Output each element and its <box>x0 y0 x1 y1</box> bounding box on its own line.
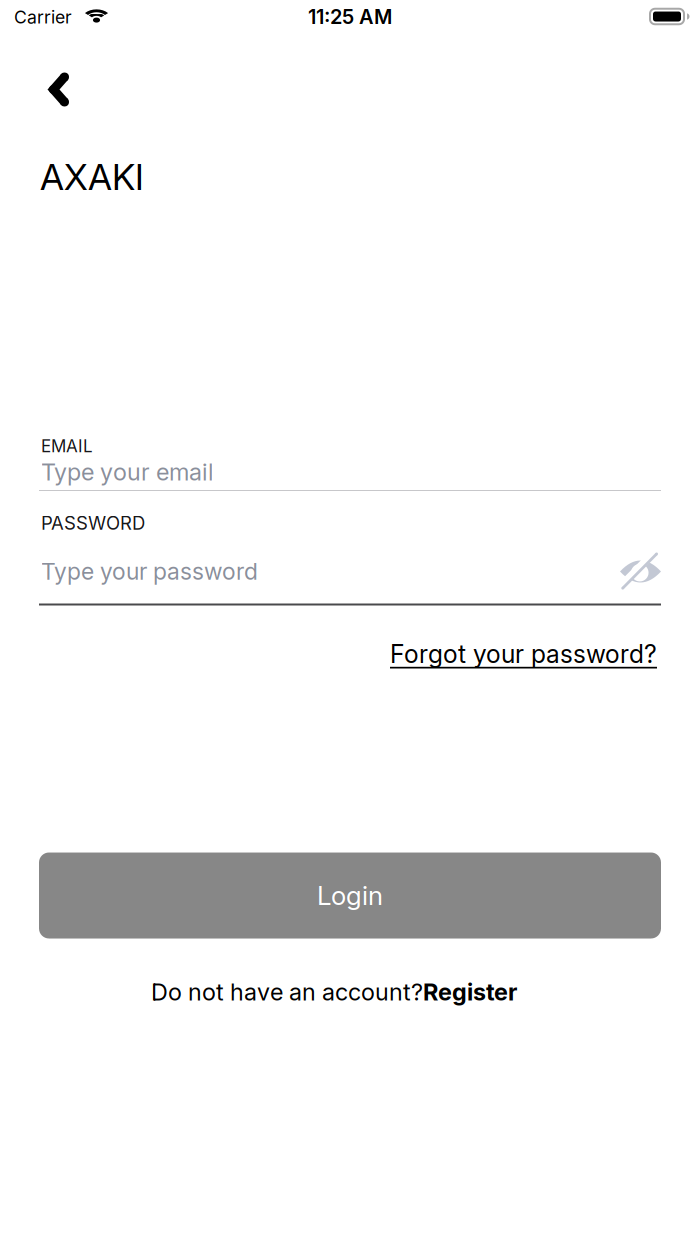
staticText: Type your email <box>41 458 214 486</box>
staticText: AXAKI <box>40 155 144 199</box>
staticText: Carrier <box>14 6 72 28</box>
staticText: Forgot your password? <box>390 639 657 669</box>
button[interactable]: Login <box>39 852 661 938</box>
button[interactable] <box>29 59 89 119</box>
staticText: Type your password <box>41 558 258 585</box>
staticText: 11:25 AM <box>308 4 392 29</box>
staticText: Do not have an account? <box>151 978 423 1006</box>
button[interactable] <box>615 549 665 593</box>
staticText: Login <box>317 880 383 911</box>
button[interactable]: Register <box>423 978 517 1006</box>
staticText: EMAIL <box>41 436 93 456</box>
staticText: PASSWORD <box>41 512 145 534</box>
staticText: Register <box>423 978 517 1006</box>
button[interactable]: Forgot your password? <box>390 639 657 669</box>
